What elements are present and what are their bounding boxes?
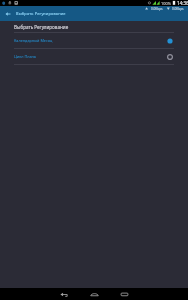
button[interactable]: Back [58, 288, 70, 300]
button[interactable]: Home [88, 288, 100, 300]
staticText: 0.0Kbps [151, 7, 163, 11]
staticText: 100% [161, 1, 171, 6]
staticText: Выбрать Регулирование [16, 11, 66, 16]
button[interactable]: Recent apps [118, 288, 130, 300]
button[interactable]: Календарный Месяц [0, 33, 188, 48]
staticText: 0.0Kbps [172, 7, 184, 11]
staticText: Календарный Месяц [14, 38, 53, 43]
staticText: 14:36 [177, 0, 188, 6]
button[interactable]: Back [0, 6, 16, 21]
staticText: Цикл Плана [14, 54, 36, 59]
staticText: Выбрать Регулирование [14, 24, 69, 30]
button[interactable]: Цикл Плана [0, 49, 188, 64]
